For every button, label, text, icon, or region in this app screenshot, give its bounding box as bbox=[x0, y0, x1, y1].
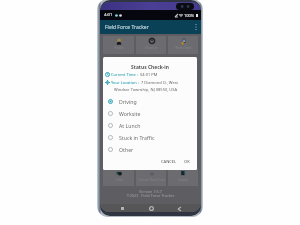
staticText: Status Check-in bbox=[103, 64, 197, 71]
staticText: 100% bbox=[184, 13, 195, 18]
button[interactable]: Profile bbox=[103, 36, 134, 54]
staticText: Current Time : bbox=[111, 72, 138, 77]
button[interactable]: Worksite bbox=[108, 107, 197, 119]
button[interactable]: Work Order bbox=[168, 36, 198, 54]
button[interactable]: More options bbox=[192, 22, 199, 32]
staticText: Help bbox=[116, 178, 123, 182]
staticText: 4:01 bbox=[104, 12, 113, 18]
staticText: Other bbox=[119, 146, 134, 153]
staticText: Your Location : bbox=[111, 80, 139, 85]
button[interactable]: Check In bbox=[136, 36, 166, 54]
staticText: Logout bbox=[178, 178, 188, 182]
staticText: Windsor Township, NJ 08550, USA bbox=[114, 87, 178, 92]
button[interactable]: Driving bbox=[108, 95, 197, 107]
button[interactable]: Recents bbox=[116, 204, 128, 212]
button[interactable]: CANCEL bbox=[160, 158, 178, 165]
staticText: Field Force Tracker bbox=[105, 24, 149, 31]
staticText: 04:01 PM bbox=[140, 72, 158, 77]
button[interactable]: Logout bbox=[168, 168, 198, 186]
staticText: Work Order bbox=[175, 46, 192, 50]
staticText: Stuck in Traffic bbox=[119, 134, 155, 141]
staticText: Custom Data Form bbox=[138, 178, 165, 182]
button[interactable]: Custom Data Form bbox=[136, 168, 166, 186]
button[interactable]: Stuck in Traffic bbox=[108, 131, 197, 143]
staticText: At Lunch bbox=[119, 122, 141, 129]
button[interactable]: At Lunch bbox=[108, 119, 197, 131]
button[interactable]: Other bbox=[108, 143, 197, 155]
staticText: Version 7.6.7 bbox=[100, 189, 201, 194]
button[interactable]: OK bbox=[183, 158, 191, 165]
button[interactable]: Back bbox=[173, 204, 185, 212]
button[interactable]: Help bbox=[103, 168, 134, 186]
button[interactable]: Home bbox=[145, 204, 157, 212]
staticText: Driving bbox=[119, 98, 137, 105]
staticText: ©2023 Field Force Tracker bbox=[100, 193, 201, 198]
staticText: Profile bbox=[114, 46, 124, 50]
staticText: 7 Diamond Ct, West bbox=[141, 80, 178, 85]
staticText: Check In bbox=[145, 46, 158, 50]
staticText: Worksite bbox=[119, 110, 141, 117]
